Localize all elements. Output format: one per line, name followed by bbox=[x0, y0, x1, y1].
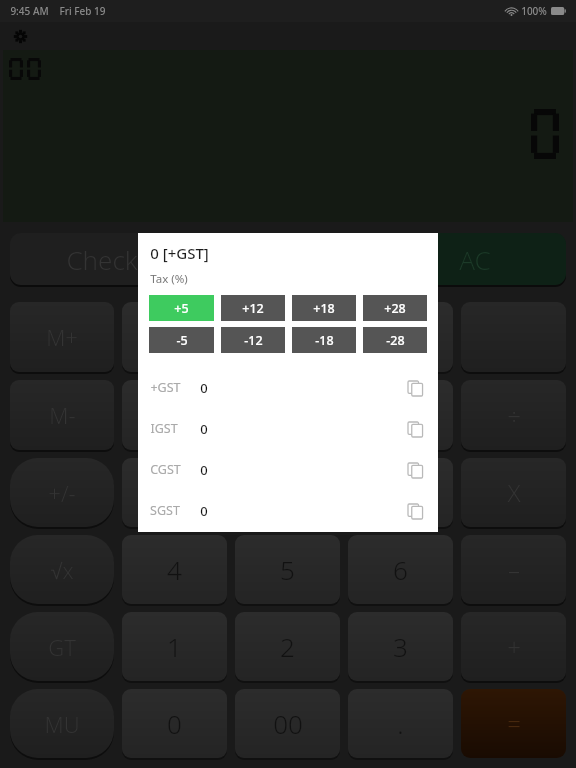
button[interactable] bbox=[122, 302, 227, 372]
button[interactable]: Settings bbox=[10, 26, 30, 46]
button[interactable] bbox=[348, 380, 453, 450]
button[interactable]: +18 bbox=[292, 295, 356, 321]
staticText: 0 bbox=[200, 420, 208, 438]
button[interactable]: GT bbox=[10, 612, 114, 681]
button[interactable]: Copy SGST bbox=[404, 500, 426, 522]
staticText: 0 [+GST] bbox=[150, 243, 209, 263]
staticText: CGST bbox=[150, 461, 181, 478]
button[interactable]: Copy IGST bbox=[404, 418, 426, 440]
staticText: √x bbox=[50, 555, 74, 585]
staticText: = bbox=[507, 707, 521, 740]
button[interactable]: 3 bbox=[348, 612, 453, 681]
button[interactable]: Copy CGST bbox=[404, 459, 426, 481]
staticText: M- bbox=[49, 400, 76, 430]
staticText: 0 bbox=[167, 706, 182, 741]
staticText: 0 bbox=[200, 379, 208, 397]
button[interactable]: +5 bbox=[149, 295, 214, 321]
button[interactable]: +28 bbox=[363, 295, 427, 321]
button[interactable]: Copy +GST bbox=[404, 377, 426, 399]
button[interactable]: SGST bbox=[150, 490, 426, 531]
staticText: 9:45 AM bbox=[10, 4, 49, 18]
button[interactable]: CGST bbox=[150, 449, 426, 490]
staticText: 5 bbox=[280, 552, 295, 587]
staticText: 9 bbox=[393, 475, 408, 510]
button[interactable]: IGST bbox=[150, 408, 426, 449]
staticText: +12 bbox=[242, 300, 264, 317]
button[interactable]: 6 bbox=[348, 535, 453, 604]
button[interactable]: 5 bbox=[235, 535, 340, 604]
button[interactable]: MU bbox=[10, 689, 114, 758]
button[interactable]: -28 bbox=[363, 327, 427, 353]
staticText: AC bbox=[459, 242, 491, 277]
button[interactable]: 9 bbox=[348, 458, 453, 527]
staticText: +18 bbox=[313, 300, 335, 317]
button[interactable]: 0 bbox=[122, 689, 227, 758]
button[interactable]: 7 bbox=[122, 458, 227, 527]
staticText: 7 bbox=[167, 475, 182, 510]
button[interactable]: -5 bbox=[149, 327, 214, 353]
staticText: IGST bbox=[150, 420, 178, 437]
staticText: Fri Feb 19 bbox=[59, 4, 106, 18]
button[interactable]: -18 bbox=[292, 327, 356, 353]
button[interactable]: AC bbox=[384, 233, 566, 285]
button[interactable]: = bbox=[461, 689, 566, 758]
staticText: GT bbox=[48, 632, 76, 662]
button[interactable]: -12 bbox=[221, 327, 285, 353]
staticText: 6 bbox=[393, 552, 408, 587]
staticText: +28 bbox=[384, 300, 406, 317]
staticText: 1 bbox=[167, 629, 182, 664]
button[interactable] bbox=[122, 380, 227, 450]
staticText: +5 bbox=[174, 300, 189, 317]
staticText: 2 bbox=[280, 629, 295, 664]
button[interactable]: 4 bbox=[122, 535, 227, 604]
staticText: M+ bbox=[46, 322, 78, 352]
staticText: X bbox=[507, 476, 521, 509]
button[interactable]: +12 bbox=[221, 295, 285, 321]
staticText: -28 bbox=[386, 332, 405, 349]
button[interactable]: √x bbox=[10, 535, 114, 604]
button[interactable]: +GST bbox=[150, 367, 426, 408]
button[interactable]: +/- bbox=[10, 458, 114, 527]
staticText: +GST bbox=[150, 379, 181, 396]
staticText: -5 bbox=[176, 332, 188, 349]
staticText: 3 bbox=[393, 629, 408, 664]
staticText: 0 bbox=[200, 502, 208, 520]
button[interactable]: Check bbox=[10, 233, 193, 285]
button[interactable]: 00 bbox=[235, 689, 340, 758]
staticText: 0 bbox=[200, 461, 208, 479]
staticText: Check bbox=[66, 242, 138, 277]
staticText: 4 bbox=[167, 552, 182, 587]
staticText: -18 bbox=[315, 332, 334, 349]
button[interactable] bbox=[348, 302, 453, 372]
button[interactable] bbox=[235, 302, 340, 372]
staticText: MU bbox=[44, 709, 80, 739]
staticText: 00 bbox=[273, 706, 303, 741]
button[interactable]: M+ bbox=[10, 302, 114, 372]
button[interactable]: 1 bbox=[122, 612, 227, 681]
staticText: -12 bbox=[244, 332, 263, 349]
staticText: Tax (%) bbox=[150, 271, 188, 287]
staticText: SGST bbox=[150, 502, 180, 519]
button[interactable]: 2 bbox=[235, 612, 340, 681]
staticText: 100% bbox=[521, 4, 547, 18]
staticText: +/- bbox=[48, 478, 76, 508]
